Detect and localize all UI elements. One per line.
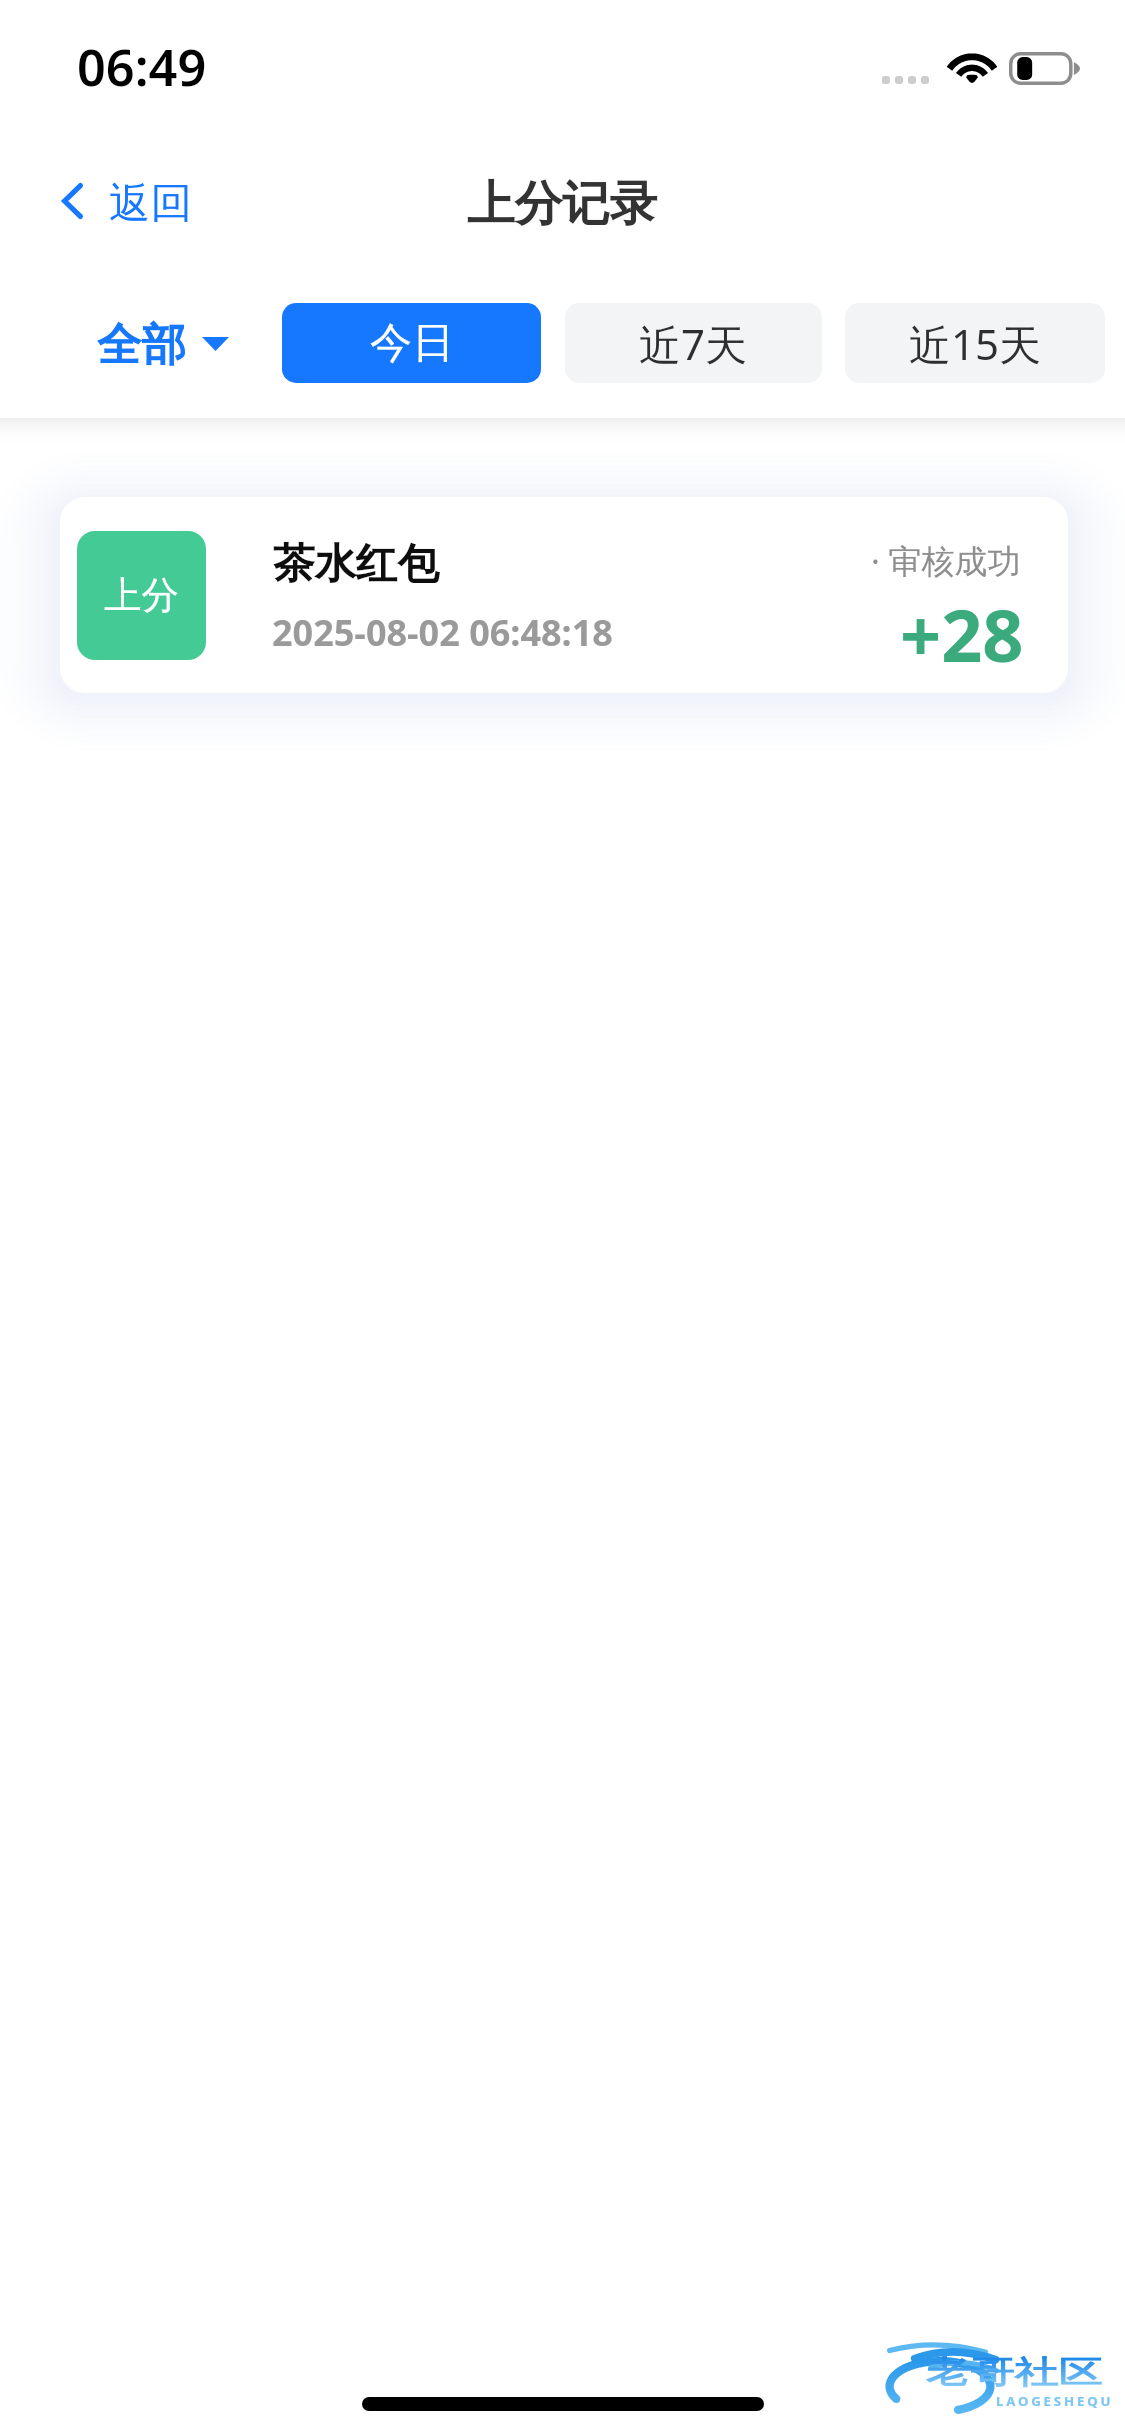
staticText: 茶水红包 (273, 538, 439, 590)
staticText: 近15天 (909, 315, 1042, 372)
button[interactable]: 近7天 (565, 303, 822, 383)
staticText: 06:49 (77, 32, 207, 101)
button[interactable]: 近15天 (845, 303, 1105, 383)
staticText: 上分记录 (467, 174, 658, 234)
staticText: +28 (900, 585, 1024, 683)
staticText: · 审核成功 (871, 538, 1021, 583)
button[interactable]: 上分 (60, 497, 1068, 693)
button[interactable]: 返回 (41, 151, 213, 251)
staticText: 今日 (370, 317, 454, 370)
staticText: 老哥社区 (926, 2354, 1103, 2393)
staticText: 上分 (104, 572, 179, 619)
button[interactable]: 今日 (282, 303, 541, 383)
staticText: 2025-08-02 06:48:18 (272, 608, 613, 657)
staticText: LAOGESHEQU (996, 2392, 1114, 2410)
button[interactable]: 全部 (73, 296, 253, 394)
staticText: 近7天 (639, 315, 748, 372)
staticText: 返回 (109, 177, 192, 229)
staticText: 全部 (97, 317, 186, 373)
